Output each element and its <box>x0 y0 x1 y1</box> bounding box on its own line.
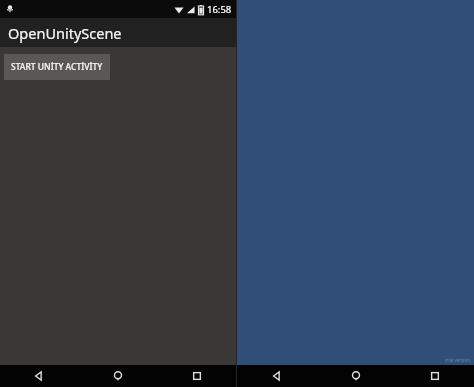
button[interactable]: Recents <box>157 365 236 387</box>
button[interactable]: Back <box>0 365 78 387</box>
button[interactable]: Recents <box>395 365 474 387</box>
button[interactable]: START UNİTY ACTİVİTY <box>4 54 110 80</box>
staticText: START UNİTY ACTİVİTY <box>11 61 103 73</box>
staticText: trial version <box>445 357 471 363</box>
button[interactable]: Home <box>78 365 157 387</box>
button[interactable]: Back <box>237 365 316 387</box>
staticText: OpenUnityScene <box>8 23 122 43</box>
staticText: 16:58 <box>207 3 232 16</box>
button[interactable]: Home <box>316 365 395 387</box>
